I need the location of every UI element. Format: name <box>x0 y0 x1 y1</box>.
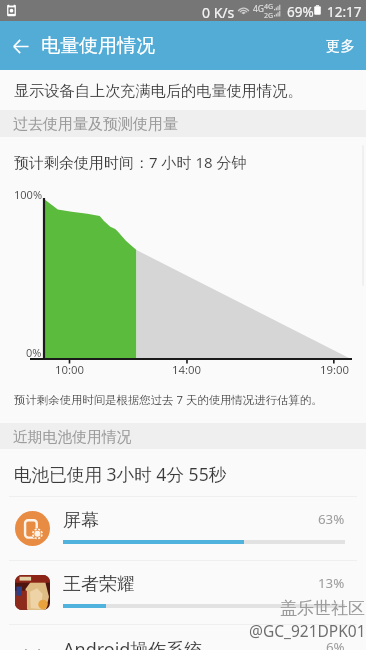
staticText: 王者荣耀 <box>63 573 135 596</box>
staticText: 63% <box>318 510 345 528</box>
staticText: 显示设备自上次充满电后的电量使用情况。 <box>14 81 303 100</box>
staticText: 盖乐世社区 <box>280 598 365 619</box>
staticText: 电量使用情况 <box>41 34 155 58</box>
staticText: 10:00 <box>55 362 85 378</box>
staticText: 0 K/s <box>202 3 235 22</box>
staticText: 过去使用量及预测使用量 <box>13 115 178 134</box>
staticText: 近期电池使用情况 <box>13 428 132 447</box>
staticText: 0% <box>26 345 42 360</box>
staticText: 14:00 <box>172 362 202 378</box>
staticText: 预计剩余使用时间：7 小时 18 分钟 <box>14 152 247 172</box>
button[interactable]: 屏幕 <box>0 496 366 560</box>
staticText: 6% <box>326 638 345 650</box>
button[interactable]: Android操作系统 <box>0 624 366 650</box>
staticText: Android操作系统 <box>63 637 203 650</box>
button[interactable]: 王者荣耀 <box>0 560 366 624</box>
staticText: 12:17 <box>327 3 362 21</box>
button[interactable]: Back <box>4 29 38 63</box>
staticText: 2G <box>264 11 274 21</box>
staticText: 4G <box>253 3 265 15</box>
staticText: 69% <box>287 3 314 21</box>
staticText: 屏幕 <box>63 509 99 532</box>
staticText: 100% <box>14 187 43 202</box>
staticText: 更多 <box>326 37 355 55</box>
staticText: @GC_921DPK01 <box>249 620 366 641</box>
staticText: 13% <box>318 574 345 592</box>
staticText: 19:00 <box>320 362 350 378</box>
button[interactable]: 更多 <box>322 31 359 61</box>
staticText: 预计剩余使用时间是根据您过去 7 天的使用情况进行估算的。 <box>14 392 323 408</box>
staticText: 电池已使用 3小时 4分 55秒 <box>14 462 227 486</box>
staticText: 4G <box>264 2 274 12</box>
